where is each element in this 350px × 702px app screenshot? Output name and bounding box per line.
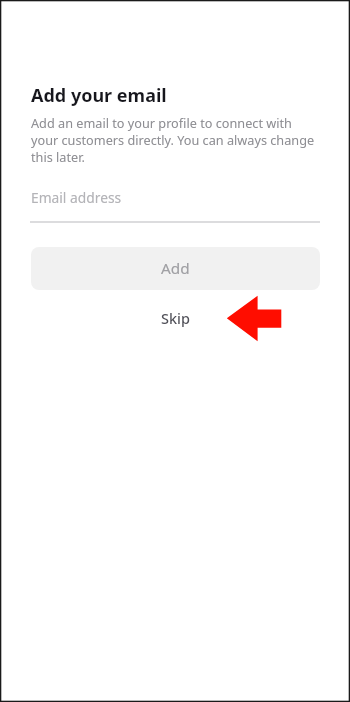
- staticText: Add: [161, 258, 190, 279]
- button[interactable]: Skip: [31, 296, 320, 339]
- other: Annotation arrow pointing to Skip: [226, 295, 282, 342]
- staticText: Email address: [31, 188, 122, 207]
- staticText: Skip: [161, 308, 190, 328]
- staticText: Add an email to your profile to connect …: [31, 114, 322, 165]
- button[interactable]: Email address: [30, 182, 320, 223]
- button[interactable]: Add: [31, 247, 320, 290]
- staticText: Add your email: [31, 83, 167, 108]
